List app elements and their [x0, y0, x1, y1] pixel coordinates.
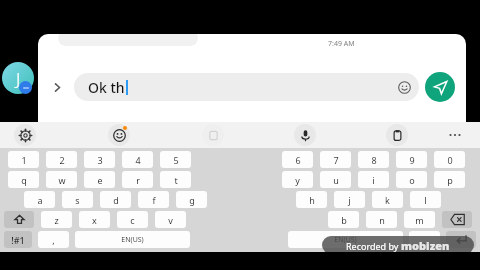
- staticText: ,: [52, 234, 55, 246]
- staticText: y: [295, 174, 300, 186]
- button[interactable]: y: [282, 171, 313, 188]
- staticText: x: [92, 214, 97, 226]
- staticText: c: [130, 214, 135, 226]
- staticText: q: [21, 174, 27, 186]
- staticText: f: [152, 194, 156, 206]
- staticText: d: [113, 194, 119, 206]
- staticText: J: [16, 67, 21, 90]
- staticText: z: [54, 214, 59, 226]
- staticText: v: [168, 214, 173, 226]
- staticText: h: [309, 194, 315, 206]
- button[interactable]: z: [41, 211, 72, 228]
- staticText: 4: [135, 154, 141, 166]
- button[interactable]: J: [2, 62, 34, 94]
- button[interactable]: q: [8, 171, 39, 188]
- staticText: t: [174, 174, 178, 186]
- staticText: EN(US): [121, 235, 144, 245]
- button[interactable]: [446, 231, 476, 248]
- staticText: Ok th: [88, 78, 125, 97]
- staticText: r: [136, 174, 140, 186]
- button[interactable]: o: [396, 171, 427, 188]
- button[interactable]: c: [117, 211, 148, 228]
- button[interactable]: w: [46, 171, 77, 188]
- staticText: e: [97, 174, 103, 186]
- staticText: 2: [59, 154, 65, 166]
- staticText: m: [415, 214, 424, 226]
- button[interactable]: j: [334, 191, 365, 208]
- button[interactable]: Emoji: [395, 78, 413, 96]
- staticText: !#1: [11, 234, 25, 246]
- button[interactable]: h: [296, 191, 327, 208]
- button[interactable]: e: [84, 171, 115, 188]
- button[interactable]: b: [328, 211, 359, 228]
- button[interactable]: 3: [84, 151, 115, 168]
- button[interactable]: 8: [358, 151, 389, 168]
- staticText: 5: [173, 154, 179, 166]
- button[interactable]: 9: [396, 151, 427, 168]
- button[interactable]: s: [62, 191, 93, 208]
- staticText: 9: [409, 154, 415, 166]
- button[interactable]: Ok th: [74, 73, 419, 101]
- staticText: mobizen: [401, 238, 450, 253]
- button[interactable]: 1: [8, 151, 39, 168]
- button[interactable]: p: [434, 171, 465, 188]
- button[interactable]: EN(US): [75, 231, 190, 248]
- staticText: g: [189, 194, 195, 206]
- staticText: 1: [21, 154, 27, 166]
- button[interactable]: t: [160, 171, 191, 188]
- staticText: j: [348, 194, 351, 206]
- staticText: s: [75, 194, 80, 206]
- button[interactable]: More options: [444, 124, 466, 146]
- staticText: 7:49 AM: [328, 39, 355, 49]
- button[interactable]: r: [122, 171, 153, 188]
- button[interactable]: 0: [434, 151, 465, 168]
- staticText: b: [341, 214, 347, 226]
- staticText: 6: [295, 154, 301, 166]
- button[interactable]: 6: [282, 151, 313, 168]
- button[interactable]: Expand: [46, 76, 68, 98]
- staticText: k: [385, 194, 390, 206]
- button[interactable]: a: [24, 191, 55, 208]
- button[interactable]: 7: [320, 151, 351, 168]
- button[interactable]: k: [372, 191, 403, 208]
- staticText: Recorded by: [346, 240, 401, 252]
- button[interactable]: g: [176, 191, 207, 208]
- button[interactable]: Settings: [14, 124, 36, 146]
- button[interactable]: !#1: [4, 231, 32, 248]
- staticText: 0: [447, 154, 453, 166]
- staticText: n: [379, 214, 385, 226]
- button[interactable]: d: [100, 191, 131, 208]
- button[interactable]: n: [366, 211, 397, 228]
- button[interactable]: x: [79, 211, 110, 228]
- button[interactable]: [4, 211, 34, 228]
- staticText: 3: [97, 154, 103, 166]
- staticText: p: [447, 174, 453, 186]
- button[interactable]: ,: [38, 231, 69, 248]
- button[interactable]: [442, 211, 472, 228]
- button[interactable]: Sticker: [202, 124, 224, 146]
- staticText: o: [409, 174, 415, 186]
- button[interactable]: Voice input: [294, 124, 316, 146]
- button[interactable]: m: [404, 211, 435, 228]
- button[interactable]: u: [320, 171, 351, 188]
- staticText: .: [423, 234, 426, 246]
- button[interactable]: .: [409, 231, 440, 248]
- staticText: w: [58, 174, 66, 186]
- button[interactable]: f: [138, 191, 169, 208]
- staticText: 7: [333, 154, 339, 166]
- staticText: a: [37, 194, 43, 206]
- button[interactable]: Send: [425, 72, 455, 102]
- button[interactable]: EN(US): [288, 231, 403, 248]
- staticText: EN(US): [334, 235, 357, 245]
- button[interactable]: v: [155, 211, 186, 228]
- button[interactable]: Emoji: [108, 124, 130, 146]
- button[interactable]: 5: [160, 151, 191, 168]
- button[interactable]: 4: [122, 151, 153, 168]
- staticText: 8: [371, 154, 377, 166]
- staticText: u: [333, 174, 339, 186]
- button[interactable]: i: [358, 171, 389, 188]
- button[interactable]: 2: [46, 151, 77, 168]
- button[interactable]: l: [410, 191, 441, 208]
- button[interactable]: Clipboard: [386, 124, 408, 146]
